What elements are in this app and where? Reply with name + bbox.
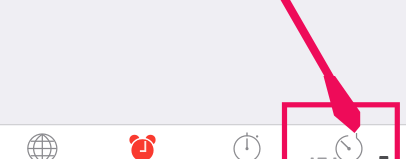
button[interactable]: Alarm	[96, 129, 188, 159]
button[interactable]: World Clock	[0, 130, 88, 159]
button[interactable]: Timer	[303, 128, 395, 159]
button[interactable]: Stopwatch	[201, 128, 293, 159]
